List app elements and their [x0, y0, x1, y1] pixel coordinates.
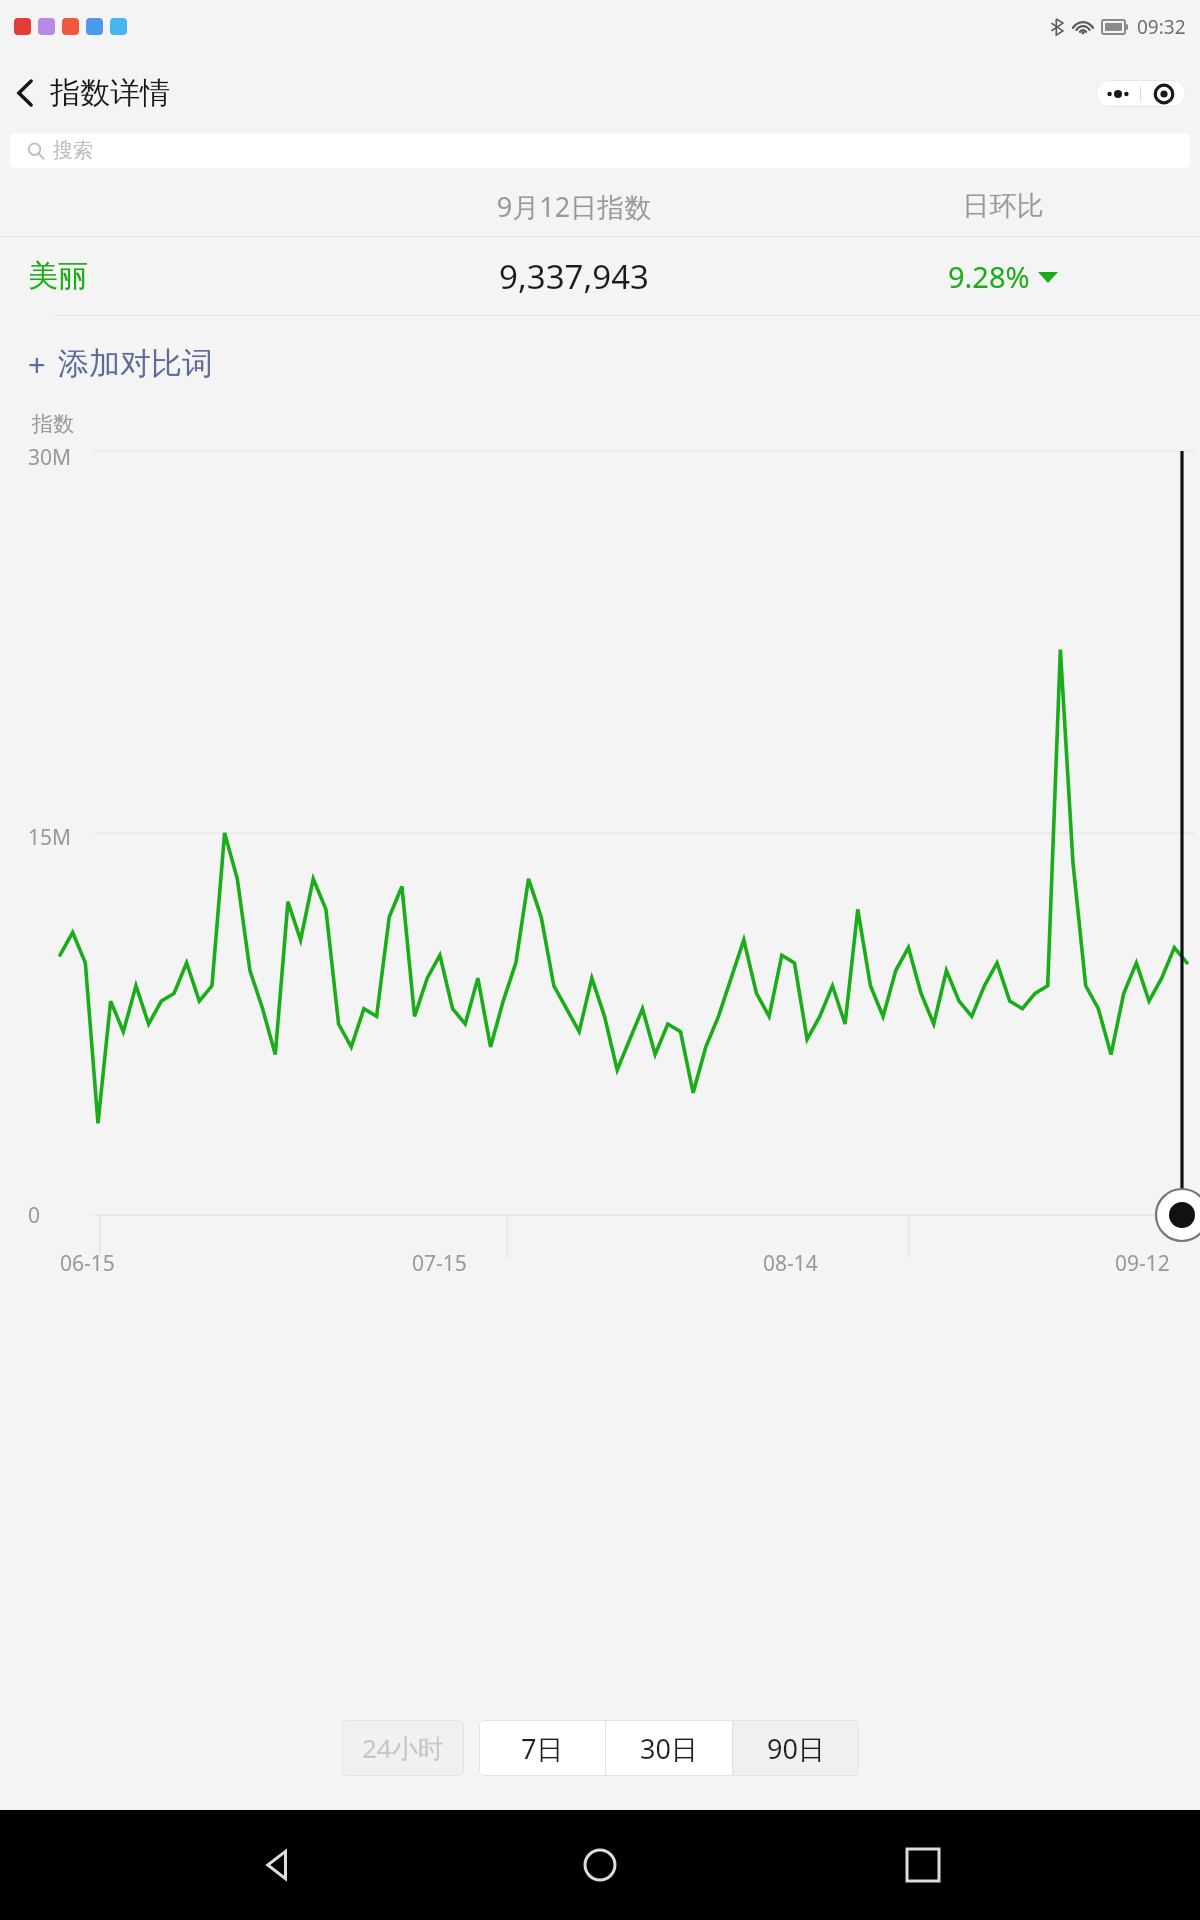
- button[interactable]: Close: [1141, 80, 1186, 107]
- button[interactable]: Back: [233, 1820, 323, 1910]
- button[interactable]: 搜索: [10, 133, 1190, 168]
- button[interactable]: 美丽: [0, 237, 1200, 315]
- staticText: +: [28, 343, 46, 385]
- staticText: 日环比: [834, 189, 1172, 223]
- staticText: 9月12日指数: [314, 188, 834, 225]
- other: Back: [14, 78, 36, 108]
- staticText: 0: [28, 1201, 41, 1230]
- staticText: 9,337,943: [314, 254, 834, 299]
- staticText: 指数: [32, 411, 74, 437]
- button[interactable]: 24小时: [342, 1720, 464, 1776]
- staticText: 7日: [521, 1730, 564, 1767]
- staticText: 08-14: [763, 1249, 818, 1278]
- button[interactable]: 7日: [479, 1720, 605, 1776]
- button[interactable]: 30日: [606, 1720, 732, 1776]
- button[interactable]: +: [28, 316, 229, 411]
- staticText: 添加对比词: [58, 344, 213, 383]
- staticText: 90日: [767, 1730, 825, 1767]
- staticText: 07-15: [412, 1249, 467, 1278]
- button[interactable]: Recents: [878, 1820, 968, 1910]
- staticText: 美丽: [28, 257, 314, 295]
- staticText: 指数详情: [50, 74, 170, 112]
- staticText: 06-15: [60, 1249, 115, 1278]
- staticText: 30M: [28, 443, 72, 472]
- staticText: 09-12: [1115, 1249, 1170, 1278]
- staticText: 搜索: [53, 138, 93, 163]
- staticText: 09:32: [1137, 14, 1186, 40]
- staticText: 15M: [28, 823, 72, 852]
- button[interactable]: More: [1096, 80, 1140, 107]
- staticText: 9.28%: [948, 257, 1030, 296]
- button[interactable]: Back: [0, 68, 178, 118]
- staticText: 24小时: [362, 1730, 444, 1766]
- button[interactable]: Home: [555, 1820, 645, 1910]
- staticText: 30日: [640, 1730, 698, 1767]
- button[interactable]: 90日: [733, 1720, 859, 1776]
